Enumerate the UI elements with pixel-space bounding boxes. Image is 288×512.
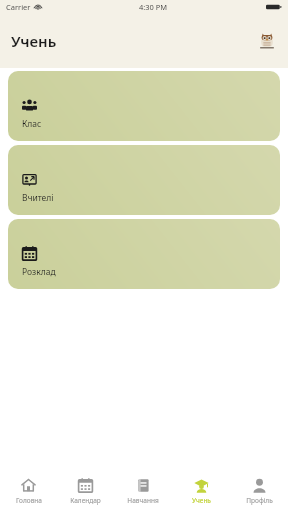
staticText: Учень bbox=[192, 496, 211, 505]
staticText: Головна bbox=[16, 496, 42, 505]
button[interactable]: Головна bbox=[0, 470, 57, 512]
staticText: Календар bbox=[70, 496, 101, 505]
button[interactable]: Календар bbox=[57, 470, 114, 512]
button[interactable]: Owl bbox=[254, 28, 280, 54]
button[interactable]: Вчителі bbox=[8, 145, 280, 215]
staticText: Навчання bbox=[127, 496, 159, 505]
button[interactable]: Клас bbox=[8, 71, 280, 141]
staticText: Розклад bbox=[22, 266, 56, 278]
button[interactable]: Розклад bbox=[8, 219, 280, 289]
staticText: 4:30 PM bbox=[139, 2, 168, 12]
button[interactable]: Профіль bbox=[230, 470, 288, 512]
staticText: Профіль bbox=[246, 496, 273, 505]
button[interactable]: Учень bbox=[172, 470, 230, 512]
staticText: Учень bbox=[11, 31, 57, 51]
staticText: Клас bbox=[22, 118, 42, 130]
staticText: Вчителі bbox=[22, 192, 54, 204]
staticText: Carrier bbox=[6, 2, 31, 12]
button[interactable]: Навчання bbox=[114, 470, 172, 512]
